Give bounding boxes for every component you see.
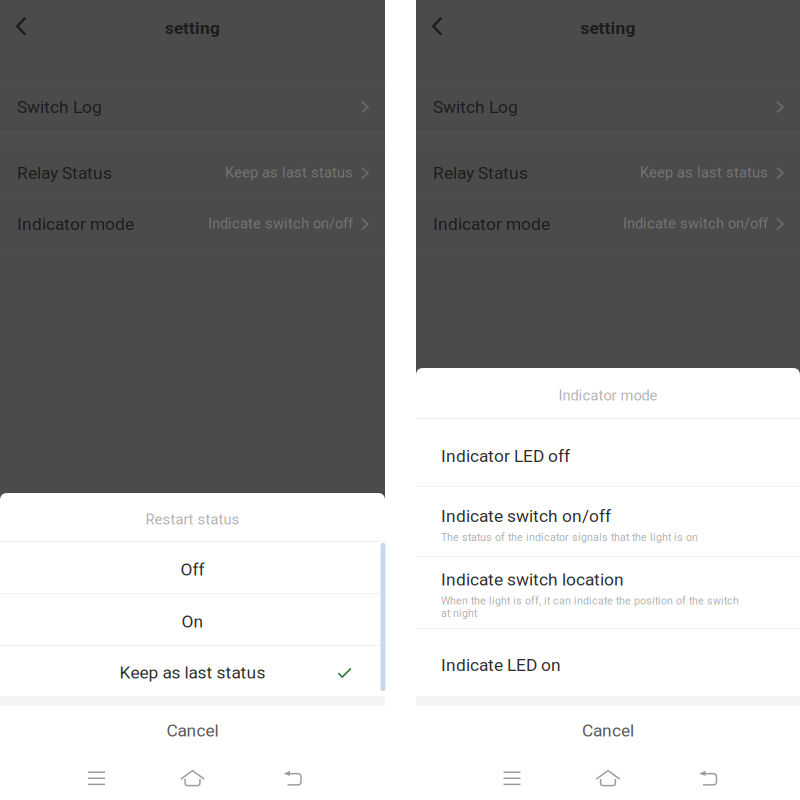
button[interactable]: Switch Log — [0, 83, 385, 132]
button[interactable]: Relay Status — [0, 145, 385, 198]
button[interactable]: Cancel — [416, 706, 800, 752]
staticText: Relay Status — [17, 163, 112, 183]
staticText: Indicator LED off — [441, 446, 570, 466]
button[interactable]: Back — [271, 760, 315, 796]
button[interactable]: Indicator mode — [416, 199, 800, 250]
button[interactable]: Indicate switch on/off — [416, 487, 800, 556]
button[interactable]: Back — [686, 760, 730, 796]
button[interactable]: Recent apps — [74, 760, 118, 796]
button[interactable]: Back — [430, 13, 468, 39]
staticText: Keep as last status — [640, 164, 768, 181]
staticText: setting — [165, 18, 220, 38]
button[interactable]: Switch Log — [416, 83, 800, 132]
button[interactable]: Relay Status — [416, 145, 800, 198]
button[interactable]: Indicate switch location — [416, 557, 800, 628]
staticText: On — [181, 611, 203, 632]
button[interactable]: Home — [170, 760, 214, 796]
staticText: Indicator mode — [558, 387, 657, 404]
staticText: Off — [180, 559, 204, 580]
button[interactable]: Indicator LED off — [416, 419, 800, 486]
button[interactable]: On — [0, 594, 385, 646]
staticText: Switch Log — [17, 97, 102, 117]
staticText: Cancel — [582, 720, 634, 741]
button[interactable]: Recent apps — [490, 760, 534, 796]
staticText: Keep as last status — [225, 164, 353, 181]
staticText: The status of the indicator signals that… — [441, 531, 698, 543]
button[interactable]: Indicator mode — [0, 199, 385, 250]
button[interactable]: Home — [586, 760, 630, 796]
staticText: Indicate switch on/off — [623, 215, 768, 232]
button[interactable]: Off — [0, 542, 385, 594]
staticText: Switch Log — [433, 97, 518, 117]
staticText: setting — [580, 18, 635, 38]
staticText: Indicator mode — [17, 214, 134, 234]
staticText: Relay Status — [433, 163, 528, 183]
staticText: Indicator mode — [433, 214, 550, 234]
staticText: Keep as last status — [119, 662, 265, 683]
button[interactable]: Back — [14, 13, 52, 39]
staticText: When the light is off, it can indicate t… — [441, 594, 739, 619]
staticText: Restart status — [145, 511, 239, 528]
staticText: Cancel — [166, 720, 218, 741]
staticText: Indicate switch location — [441, 569, 624, 590]
staticText: Indicate switch on/off — [208, 215, 353, 232]
staticText: Indicate switch on/off — [441, 506, 611, 526]
button[interactable]: Keep as last status — [0, 646, 385, 696]
button[interactable]: Indicate LED on — [416, 629, 800, 696]
button[interactable]: Cancel — [0, 706, 385, 752]
staticText: Indicate LED on — [441, 655, 561, 675]
